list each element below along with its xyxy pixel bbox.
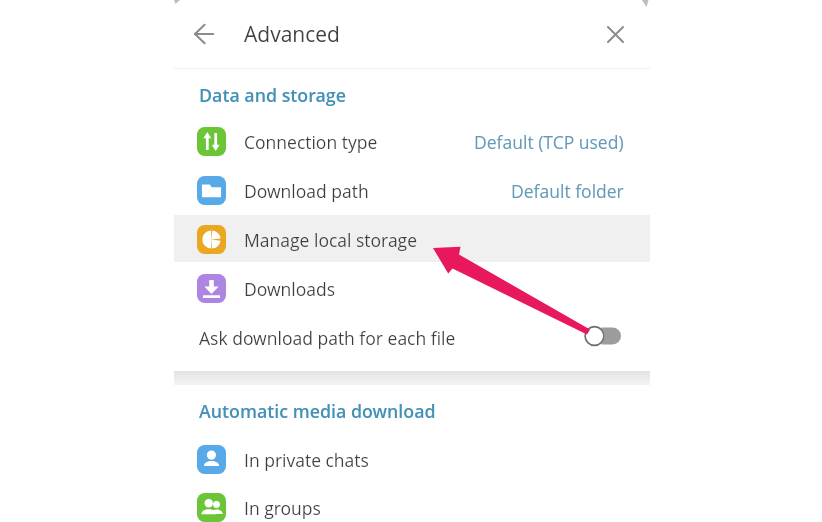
staticText: Connection type: [244, 130, 378, 154]
button[interactable]: Download path: [174, 166, 650, 215]
staticText: Ask download path for each file: [199, 326, 456, 350]
staticText: In groups: [244, 496, 321, 520]
staticText: Default folder: [511, 179, 624, 203]
staticText: Automatic media download: [199, 399, 436, 423]
staticText: In private chats: [244, 448, 369, 472]
button[interactable]: Back: [191, 16, 227, 52]
button[interactable]: In groups: [174, 483, 650, 522]
staticText: Download path: [244, 179, 369, 203]
staticText: Data and storage: [199, 83, 346, 107]
button[interactable]: Downloads: [174, 264, 650, 313]
button[interactable]: Ask download path for each file: [174, 313, 650, 362]
button[interactable]: Manage local storage: [174, 215, 650, 264]
button[interactable]: In private chats: [174, 435, 650, 484]
button[interactable]: Close: [603, 22, 628, 47]
button[interactable]: Connection type: [174, 117, 650, 166]
staticText: Manage local storage: [244, 228, 418, 252]
staticText: Downloads: [244, 277, 336, 301]
staticText: Advanced: [244, 20, 340, 49]
other: Ask download path toggle: [582, 323, 624, 349]
staticText: Default (TCP used): [474, 130, 624, 154]
